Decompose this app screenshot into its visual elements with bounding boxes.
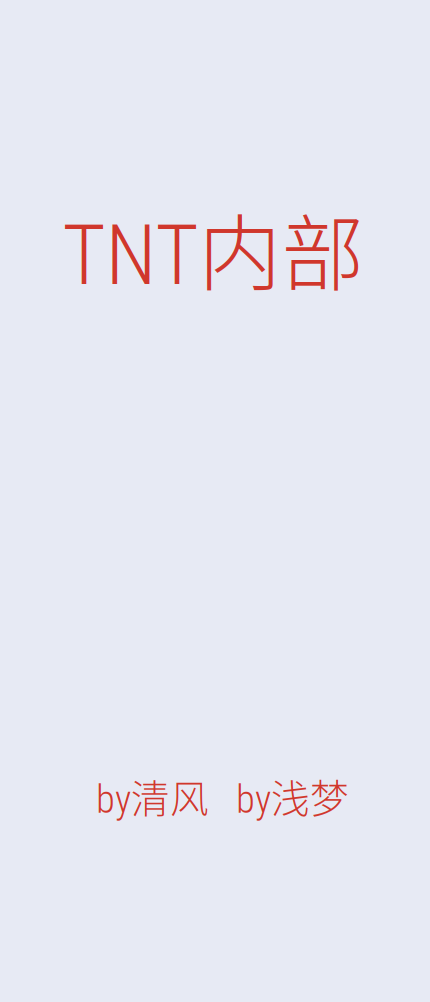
staticText: TNT内部 — [62, 188, 364, 308]
staticText: by清风 by浅梦 — [96, 768, 349, 824]
